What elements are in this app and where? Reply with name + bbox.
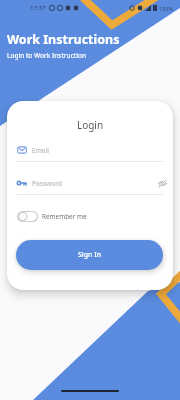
staticText: 100% <box>159 5 174 12</box>
other: Show password <box>158 179 167 188</box>
staticText: Remember me <box>42 212 87 221</box>
staticText: 17:37 <box>30 4 46 12</box>
staticText: Login <box>7 118 173 132</box>
button[interactable]: Password <box>17 178 167 188</box>
staticText: Email <box>32 146 49 155</box>
staticText: Work Instructions <box>7 31 120 48</box>
staticText: Login to Work Instruction <box>7 51 86 60</box>
staticText: Password <box>32 179 62 188</box>
button[interactable]: Email <box>17 145 167 155</box>
button[interactable]: Sign In <box>16 240 163 270</box>
button[interactable]: Remember me <box>17 210 87 223</box>
staticText: Sign In <box>78 250 102 260</box>
